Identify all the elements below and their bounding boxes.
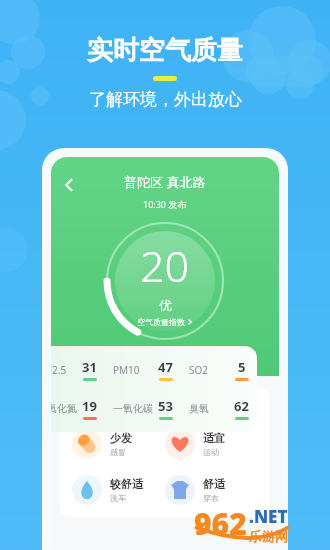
button[interactable]: 返回 bbox=[55, 171, 83, 199]
staticText: 5 bbox=[238, 358, 246, 376]
staticText: 健康建议 bbox=[72, 400, 120, 415]
staticText: 空气质量指数 bbox=[137, 317, 185, 327]
staticText: 少发 bbox=[110, 431, 132, 445]
staticText: 62 bbox=[234, 397, 249, 415]
staticText: 感冒 bbox=[110, 447, 126, 457]
staticText: 穿衣 bbox=[203, 493, 219, 503]
button[interactable]: 舒适 bbox=[165, 475, 258, 505]
staticText: SO2 bbox=[189, 363, 209, 377]
staticText: 普陀区 真北路 bbox=[124, 173, 206, 191]
staticText: 较舒适 bbox=[110, 477, 143, 491]
button[interactable]: PM10 bbox=[105, 354, 181, 385]
button[interactable]: 少发 bbox=[72, 429, 165, 459]
staticText: 962 bbox=[194, 503, 247, 544]
staticText: .NET bbox=[249, 505, 288, 528]
staticText: 53 bbox=[158, 397, 173, 415]
button[interactable]: 臭氧 bbox=[181, 393, 257, 424]
staticText: 洗车 bbox=[110, 493, 126, 503]
staticText: 10:30 发布 bbox=[143, 198, 187, 210]
staticText: 31 bbox=[82, 358, 97, 376]
button[interactable]: 二氧化氮 bbox=[51, 393, 105, 424]
button[interactable]: PM2.5 bbox=[51, 354, 105, 385]
staticText: 运动 bbox=[203, 447, 219, 457]
staticText: 一氧化碳 bbox=[113, 402, 153, 415]
staticText: PM2.5 bbox=[51, 363, 67, 377]
staticText: 优 bbox=[159, 297, 172, 313]
button[interactable]: SO2 bbox=[181, 354, 257, 385]
staticText: 实时空气质量 bbox=[87, 34, 243, 67]
staticText: 适宜 bbox=[203, 431, 225, 445]
staticText: 20 bbox=[140, 236, 190, 295]
staticText: 臭氧 bbox=[189, 402, 209, 415]
staticText: 二氧化氮 bbox=[51, 402, 77, 415]
button[interactable]: 适宜 bbox=[165, 429, 258, 459]
button[interactable]: 较舒适 bbox=[72, 475, 165, 505]
staticText: PM10 bbox=[113, 363, 140, 377]
button[interactable]: 20 bbox=[103, 219, 227, 343]
staticText: 舒适 bbox=[203, 477, 225, 491]
staticText: 47 bbox=[158, 358, 173, 376]
button[interactable]: 一氧化碳 bbox=[105, 393, 181, 424]
staticText: 乐游网 bbox=[249, 528, 288, 544]
staticText: 了解环境，外出放心 bbox=[89, 89, 242, 110]
staticText: 19 bbox=[82, 397, 97, 415]
